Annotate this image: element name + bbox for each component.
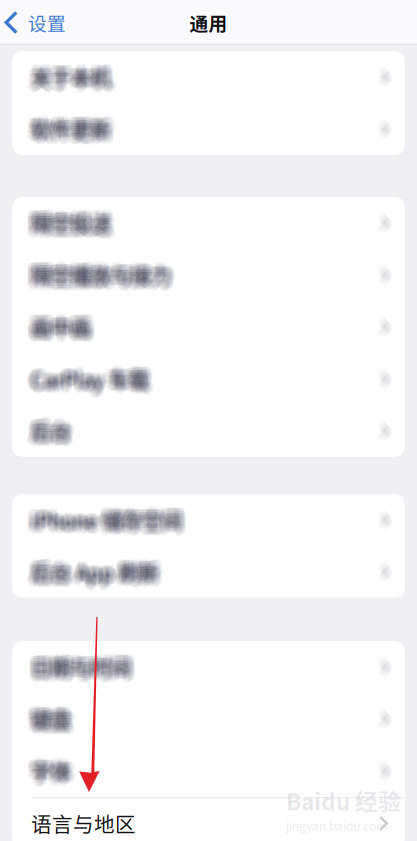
staticText: 后台 App 刷新 [34, 554, 162, 584]
staticText: 字体 [31, 759, 71, 788]
staticText: 画中画 [33, 315, 93, 344]
staticText: 关于本机 [34, 61, 114, 90]
staticText: 画中画 [33, 310, 93, 340]
staticText: 隔空播放与接力 [30, 264, 170, 293]
staticText: 键盘 [36, 707, 76, 736]
staticText: CarPlay 车载 [30, 369, 148, 398]
button[interactable]: 日期与时间 [12, 641, 405, 693]
staticText: 隔空投送 [28, 204, 108, 234]
staticText: 字体 [26, 754, 66, 784]
staticText: 字体 [31, 757, 71, 786]
staticText: 日期与时间 [34, 652, 134, 682]
staticText: 隔空播放与接力 [28, 258, 168, 287]
staticText: 隔空播放与接力 [30, 260, 170, 289]
staticText: 软件更新 [31, 117, 111, 146]
staticText: 隔空播放与接力 [27, 256, 167, 286]
staticText: CarPlay 车载 [26, 362, 144, 392]
staticText: CarPlay 车载 [27, 366, 145, 395]
staticText: 隔空播放与接力 [31, 256, 171, 285]
button[interactable]: 软件更新 [12, 103, 405, 155]
staticText: 软件更新 [33, 112, 113, 142]
button[interactable]: 键盘 [12, 693, 405, 745]
staticText: 字体 [30, 756, 70, 785]
staticText: 日期与时间 [32, 656, 132, 686]
staticText: 关于本机 [30, 62, 110, 91]
staticText: 后台 App 刷新 [29, 555, 157, 585]
staticText: 画中画 [29, 307, 89, 336]
staticText: CarPlay 车载 [33, 365, 151, 395]
staticText: 隔空播放与接力 [34, 260, 174, 290]
staticText: 关于本机 [28, 61, 108, 91]
button[interactable]: iPhone 储存空间 [12, 494, 405, 546]
staticText: 日期与时间 [32, 652, 132, 681]
staticText: 画中画 [32, 316, 92, 346]
button[interactable]: 隔空播放与接力 [12, 249, 405, 301]
staticText: 隔空播放与接力 [36, 263, 176, 292]
staticText: 隔空投送 [31, 206, 111, 236]
staticText: 字体 [26, 756, 66, 785]
staticText: 关于本机 [26, 63, 106, 93]
button[interactable]: 画中画 [12, 301, 405, 353]
staticText: 后台 [34, 412, 74, 441]
staticText: 键盘 [26, 704, 66, 733]
staticText: 画中画 [31, 309, 91, 339]
staticText: 隔空播放与接力 [29, 265, 169, 294]
staticText: 画中画 [26, 312, 86, 341]
staticText: iPhone 储存空间 [28, 503, 179, 532]
staticText: 日期与时间 [35, 652, 135, 681]
staticText: 隔空投送 [29, 203, 109, 232]
staticText: 画中画 [29, 309, 89, 338]
staticText: 软件更新 [29, 111, 109, 140]
staticText: 隔空投送 [29, 206, 109, 236]
staticText: 日期与时间 [30, 654, 130, 683]
staticText: 后台 [34, 419, 74, 449]
staticText: 字体 [34, 759, 74, 789]
staticText: 字体 [36, 757, 76, 787]
staticText: 软件更新 [29, 112, 109, 142]
staticText: 日期与时间 [27, 654, 127, 683]
staticText: CarPlay 车载 [29, 362, 147, 392]
staticText: 字体 [32, 751, 72, 781]
button[interactable]: 后台 [12, 405, 405, 457]
staticText: 键盘 [31, 702, 71, 732]
staticText: iPhone 储存空间 [29, 500, 180, 529]
staticText: CarPlay 车载 [26, 365, 144, 395]
staticText: iPhone 储存空间 [36, 503, 187, 533]
staticText: 后台 App 刷新 [29, 554, 157, 583]
staticText: 隔空投送 [26, 206, 106, 236]
staticText: 字体 [33, 757, 73, 787]
staticText: 后台 App 刷新 [32, 563, 160, 592]
staticText: 键盘 [27, 700, 67, 730]
button[interactable]: CarPlay 车载 [12, 353, 405, 405]
button[interactable]: 关于本机 [12, 51, 405, 103]
staticText: 后台 App 刷新 [34, 556, 162, 585]
staticText: 后台 App 刷新 [30, 557, 158, 586]
staticText: 字体 [36, 754, 76, 784]
staticText: iPhone 储存空间 [29, 503, 180, 533]
staticText: 后台 App 刷新 [28, 553, 156, 583]
button[interactable]: 语言与地区 [12, 797, 405, 841]
button[interactable]: 后台 App 刷新 [12, 546, 405, 598]
staticText: iPhone 储存空间 [27, 501, 178, 531]
staticText: 隔空投送 [36, 211, 116, 240]
button[interactable]: 返回设置 [0, 0, 76, 45]
staticText: iPhone 储存空间 [32, 505, 183, 534]
staticText: 后台 App 刷新 [27, 553, 155, 583]
staticText: 软件更新 [30, 119, 110, 148]
button[interactable]: 隔空投送 [12, 197, 405, 249]
staticText: iPhone 储存空间 [34, 502, 185, 532]
staticText: 后台 [29, 421, 69, 450]
staticText: 日期与时间 [29, 647, 129, 676]
staticText: iPhone 储存空间 [30, 505, 181, 534]
staticText: 键盘 [34, 703, 74, 732]
staticText: 软件更新 [36, 115, 116, 145]
staticText: CarPlay 车载 [32, 368, 150, 398]
staticText: 软件更新 [31, 115, 111, 144]
staticText: 日期与时间 [34, 654, 134, 683]
staticText: 键盘 [26, 702, 66, 732]
staticText: 后台 App 刷新 [33, 555, 161, 585]
staticText: 日期与时间 [28, 650, 128, 679]
staticText: 后台 [34, 413, 74, 443]
button[interactable]: 字体 [12, 745, 405, 797]
staticText: CarPlay 车载 [31, 361, 149, 391]
